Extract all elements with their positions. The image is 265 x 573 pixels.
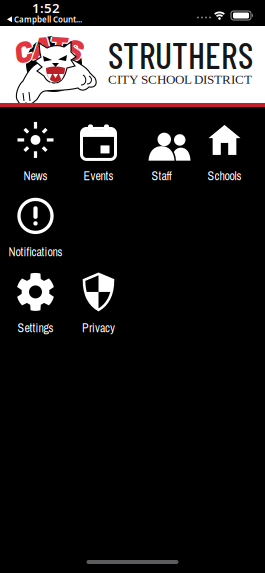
staticText: Events — [83, 168, 113, 184]
staticText: Staff — [151, 168, 171, 184]
button[interactable]: Notifications — [4, 195, 67, 261]
staticText: S — [65, 29, 83, 65]
staticText: News — [23, 168, 47, 184]
staticText: C — [15, 32, 33, 69]
staticText: T — [48, 27, 66, 64]
staticText: 1:52 — [32, 0, 60, 17]
staticText: T — [49, 26, 67, 63]
staticText: A — [31, 28, 52, 65]
staticText: T — [49, 27, 67, 64]
staticText: C — [13, 32, 31, 69]
button[interactable]: Schools — [193, 119, 256, 185]
staticText: A — [32, 28, 53, 65]
staticText: A — [31, 27, 52, 63]
staticText: S — [64, 30, 82, 67]
staticText: C — [14, 33, 32, 70]
button[interactable]: News — [4, 119, 67, 185]
staticText: Campbell Count... — [14, 14, 82, 25]
staticText: T — [50, 27, 68, 64]
staticText: A — [31, 29, 52, 66]
staticText: STRUTHERS — [108, 33, 253, 76]
staticText: S — [66, 30, 84, 67]
staticText: S — [65, 31, 83, 68]
staticText: CITY SCHOOL DISTRICT — [108, 72, 252, 86]
staticText: C — [14, 31, 32, 67]
staticText: A — [30, 28, 51, 65]
button[interactable]: Back to Campbell County — [7, 14, 82, 25]
staticText: C — [14, 32, 32, 69]
staticText: T — [49, 29, 67, 66]
staticText: Privacy — [82, 320, 115, 336]
button[interactable]: Privacy — [67, 271, 130, 337]
button[interactable]: Staff — [130, 119, 193, 185]
button[interactable]: Settings — [4, 271, 67, 337]
staticText: Settings — [17, 320, 53, 336]
staticText: S — [65, 30, 83, 67]
staticText: Notifications — [8, 244, 62, 260]
button[interactable]: Events — [67, 119, 130, 185]
staticText: Schools — [207, 168, 241, 184]
